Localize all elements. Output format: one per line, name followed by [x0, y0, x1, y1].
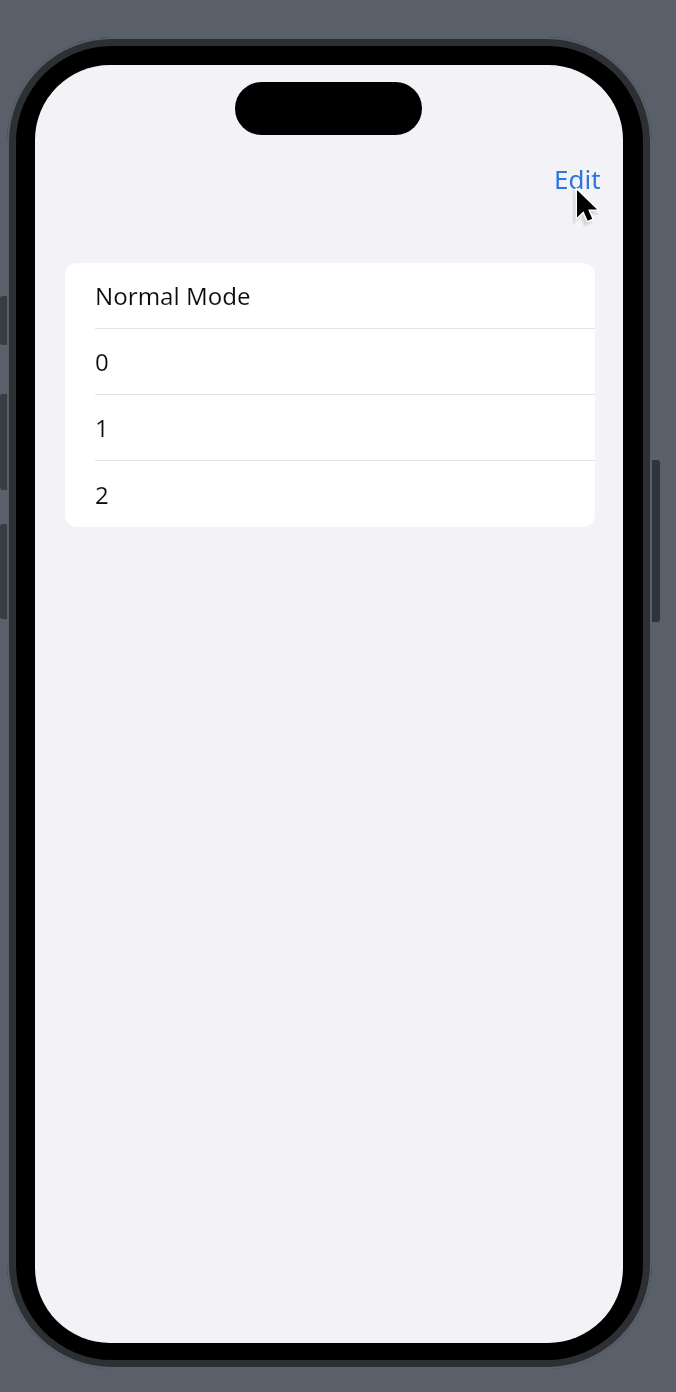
button[interactable]: 0: [65, 329, 595, 395]
button[interactable]: Normal Mode: [65, 263, 595, 329]
staticText: Edit: [554, 161, 601, 196]
button[interactable]: 2: [65, 461, 595, 527]
staticText: 0: [95, 345, 109, 378]
staticText: 1: [95, 411, 109, 444]
button[interactable]: 1: [65, 395, 595, 461]
button[interactable]: Edit: [554, 161, 601, 196]
staticText: 2: [95, 478, 109, 511]
staticText: Normal Mode: [95, 279, 251, 312]
